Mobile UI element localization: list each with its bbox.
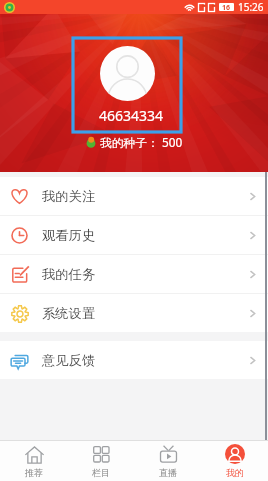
button[interactable]: 我的关注 — [0, 177, 268, 215]
button[interactable]: 意见反馈 — [0, 341, 268, 379]
staticText: 我的任务 — [42, 266, 96, 283]
button[interactable]: 系统设置 — [0, 294, 268, 332]
staticText: 推荐 — [25, 467, 43, 478]
staticText: 意见反馈 — [42, 352, 96, 369]
staticText: 15:26 — [238, 0, 264, 14]
button[interactable]: 直播 — [134, 441, 201, 481]
staticText: 46634334 — [99, 106, 164, 125]
button[interactable]: 我的任务 — [0, 255, 268, 293]
staticText: 我的关注 — [42, 188, 96, 205]
staticText: 直播 — [159, 467, 177, 478]
staticText: 16 — [222, 3, 231, 11]
staticText: 我的 — [226, 467, 244, 478]
staticText: 我的种子： 500 — [100, 134, 183, 150]
staticText: 观看历史 — [42, 227, 96, 244]
button[interactable]: 46634334 — [73, 38, 181, 132]
staticText: 栏目 — [92, 467, 110, 478]
staticText: 系统设置 — [42, 305, 96, 322]
button[interactable]: 观看历史 — [0, 216, 268, 254]
button[interactable]: 推荐 — [0, 441, 67, 481]
button[interactable]: 栏目 — [67, 441, 134, 481]
button[interactable]: 我的 — [201, 441, 268, 481]
